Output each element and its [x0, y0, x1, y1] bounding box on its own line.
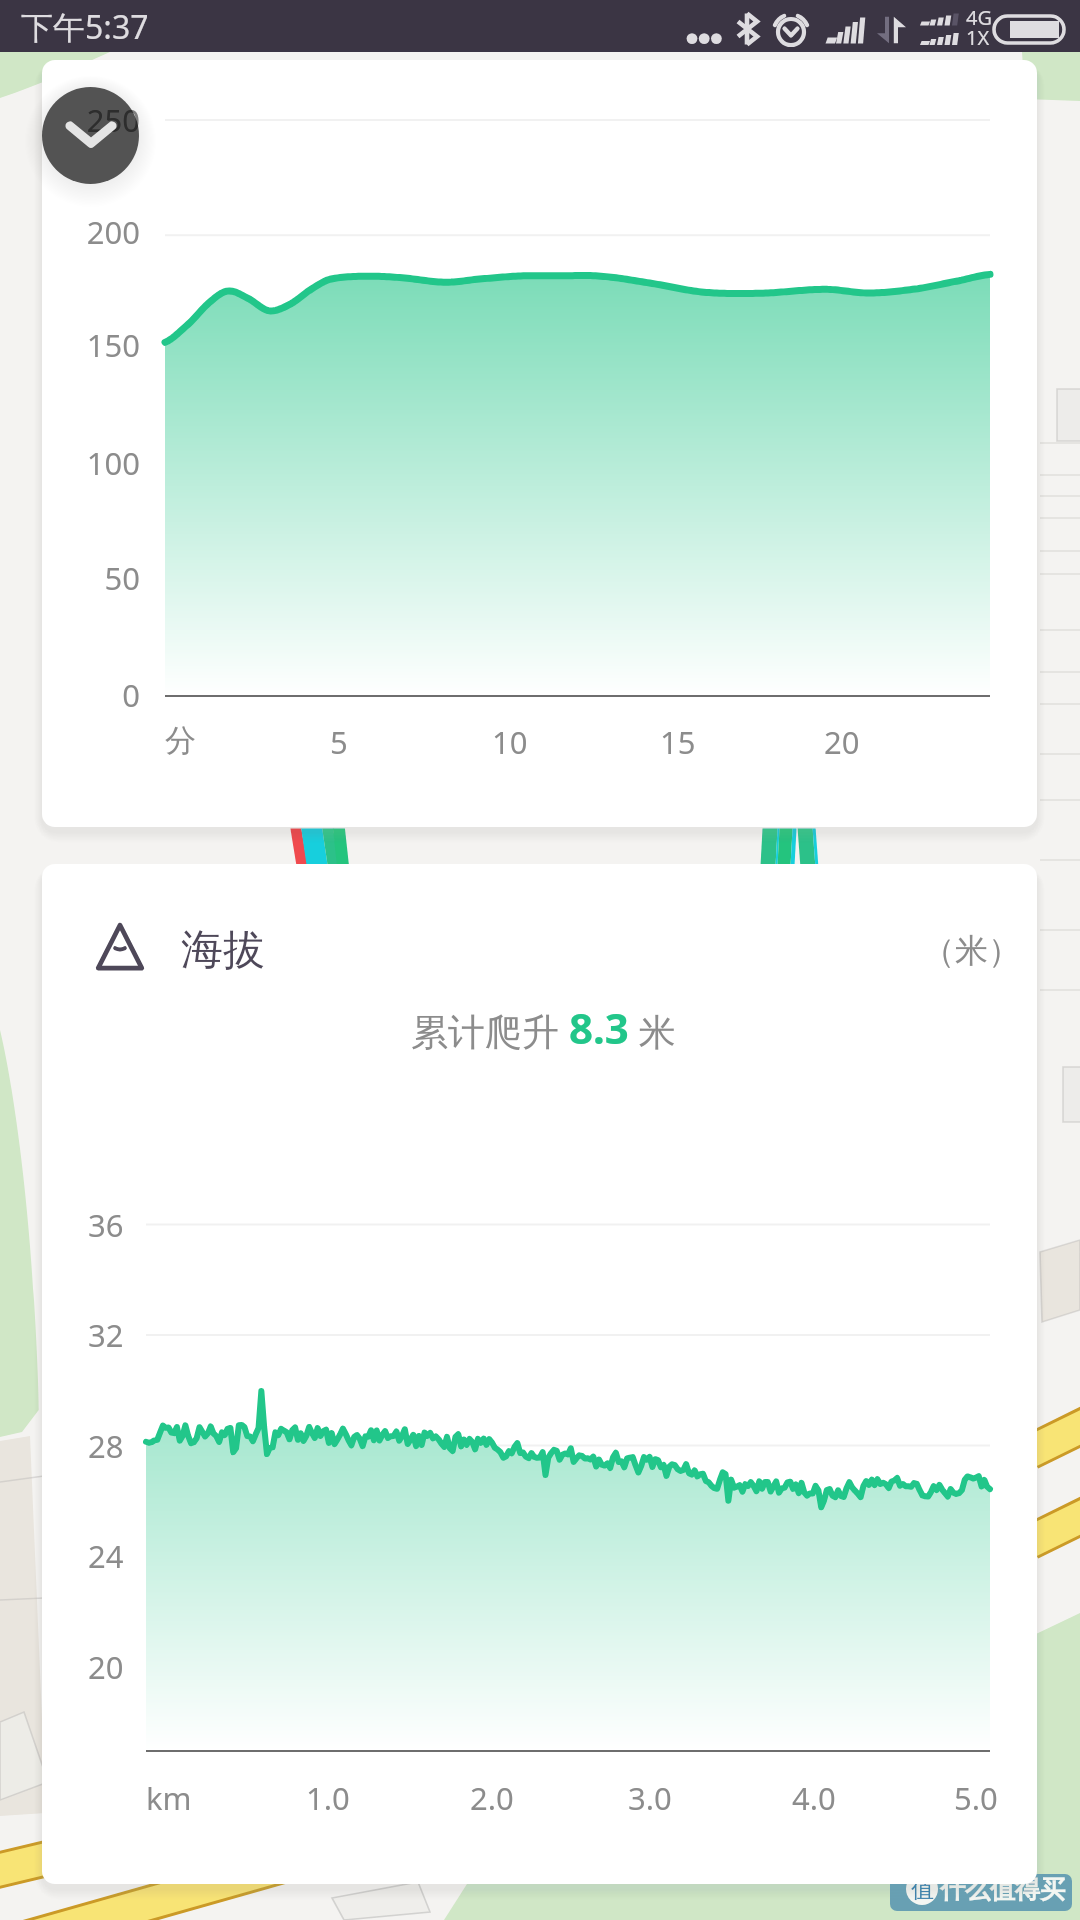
- staticText: 4.0: [792, 1777, 836, 1819]
- staticText: 24: [88, 1535, 124, 1577]
- staticText: 1.0: [306, 1777, 350, 1819]
- staticText: 8.3: [569, 999, 629, 1056]
- button[interactable]: 250: [42, 60, 1037, 827]
- staticText: 什么值得买: [940, 1874, 1065, 1905]
- staticText: 50: [104, 557, 140, 599]
- staticText: 250: [86, 99, 140, 141]
- staticText: 米: [629, 1005, 676, 1056]
- staticText: 分: [165, 721, 196, 760]
- staticText: 累计爬升: [411, 1005, 569, 1056]
- staticText: 1X: [966, 24, 990, 51]
- staticText: 4G: [966, 4, 992, 31]
- button[interactable]: Collapse: [42, 87, 139, 184]
- staticText: 5.0: [954, 1777, 998, 1819]
- staticText: 36: [88, 1204, 124, 1246]
- staticText: （米）: [922, 930, 1021, 972]
- staticText: 5: [330, 721, 348, 763]
- staticText: 100: [86, 442, 140, 484]
- staticText: 150: [86, 324, 140, 366]
- staticText: 32: [88, 1314, 124, 1356]
- staticText: 20: [824, 721, 860, 763]
- staticText: 0: [122, 674, 140, 716]
- staticText: 海拔: [181, 924, 265, 977]
- staticText: km: [146, 1777, 192, 1819]
- staticText: 下午5:37: [21, 5, 149, 49]
- staticText: 200: [86, 211, 140, 253]
- staticText: 值: [911, 1875, 934, 1904]
- staticText: 28: [88, 1425, 124, 1467]
- staticText: 10: [492, 721, 528, 763]
- staticText: 2.0: [470, 1777, 514, 1819]
- button[interactable]: 海拔: [42, 864, 1037, 1884]
- staticText: 20: [88, 1646, 124, 1688]
- staticText: 15: [660, 721, 696, 763]
- staticText: 3.0: [628, 1777, 672, 1819]
